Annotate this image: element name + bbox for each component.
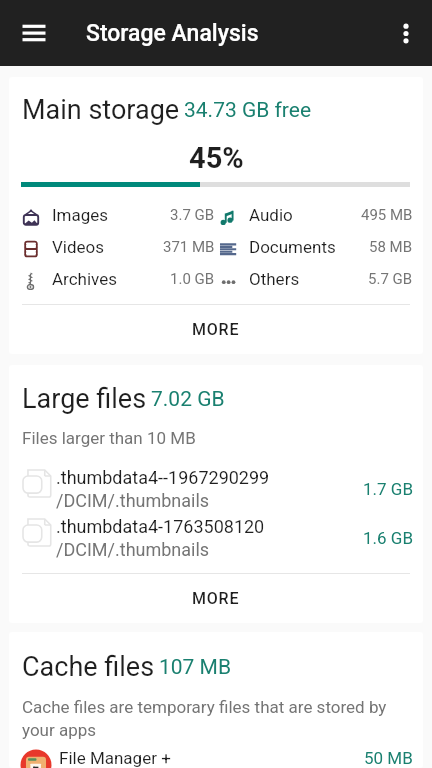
staticText: Cache files xyxy=(22,651,155,683)
staticText: Archives xyxy=(52,269,118,289)
button[interactable]: MORE xyxy=(9,305,423,354)
staticText: Videos xyxy=(52,237,105,257)
staticText: 495 MB xyxy=(361,206,413,224)
staticText: Storage Analysis xyxy=(86,20,259,47)
staticText: .thumbdata4-1763508120 xyxy=(56,516,265,537)
button[interactable]: Open navigation menu xyxy=(6,5,62,61)
staticText: Main storage xyxy=(22,94,180,126)
staticText: Audio xyxy=(249,205,293,225)
staticText: Others xyxy=(249,269,300,289)
staticText: Documents xyxy=(249,237,336,257)
button[interactable]: .thumbdata4-1763508120 xyxy=(9,513,423,562)
staticText: 107 MB xyxy=(159,655,232,680)
staticText: Images xyxy=(52,205,109,225)
button[interactable]: Others xyxy=(216,263,423,295)
button[interactable]: File Manager + xyxy=(9,748,423,768)
staticText: MORE xyxy=(192,589,240,608)
staticText: 5.7 GB xyxy=(368,270,413,288)
staticText: File Manager + xyxy=(59,748,171,768)
staticText: Cache files are temporary files that are… xyxy=(22,697,387,740)
staticText: Large files xyxy=(22,383,147,415)
staticText: MORE xyxy=(192,320,240,339)
staticText: 371 MB xyxy=(163,238,215,256)
button[interactable]: .thumbdata4--1967290299 xyxy=(9,464,423,513)
button[interactable]: Archives xyxy=(9,263,216,295)
staticText: 45% xyxy=(189,141,244,175)
button[interactable]: Images xyxy=(9,199,216,231)
staticText: .thumbdata4--1967290299 xyxy=(56,467,270,488)
staticText: 1.7 GB xyxy=(363,479,413,499)
staticText: 1.6 GB xyxy=(363,528,413,548)
staticText: 1.0 GB xyxy=(170,270,215,288)
button[interactable]: Audio xyxy=(216,199,423,231)
button[interactable]: Videos xyxy=(9,231,216,263)
staticText: /DCIM/.thumbnails xyxy=(56,539,210,560)
button[interactable]: MORE xyxy=(9,574,423,623)
staticText: 3.7 GB xyxy=(170,206,215,224)
button[interactable]: Documents xyxy=(216,231,423,263)
staticText: 58 MB xyxy=(369,238,413,256)
staticText: 34.73 GB free xyxy=(184,98,312,123)
staticText: /DCIM/.thumbnails xyxy=(56,490,210,511)
staticText: 50 MB xyxy=(364,748,413,768)
staticText: 7.02 GB xyxy=(151,387,225,412)
staticText: Files larger than 10 MB xyxy=(22,428,196,448)
button[interactable]: More options xyxy=(382,9,430,57)
